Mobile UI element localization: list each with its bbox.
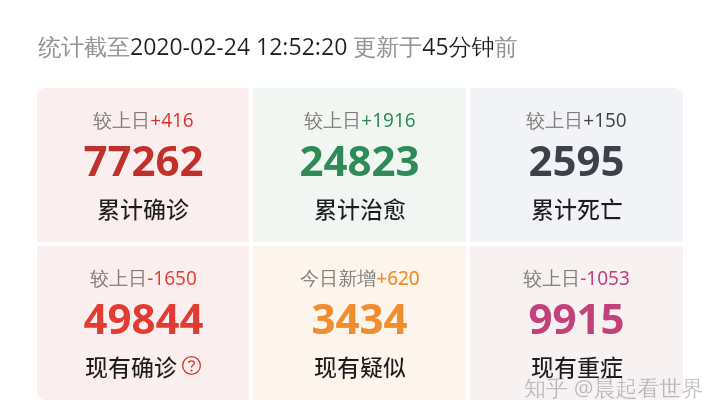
staticText: 2595 [528, 131, 625, 188]
staticText: 较上日+1916 [304, 107, 416, 133]
staticText: 现有确诊 [85, 349, 177, 382]
button[interactable]: 现有确诊说明 [182, 356, 201, 375]
staticText: 较上日+416 [93, 107, 194, 133]
staticText: 知乎 @晨起看世界 [524, 372, 704, 402]
staticText: 49844 [83, 289, 204, 346]
button[interactable]: 较上日+416 [37, 88, 249, 242]
staticText: 24823 [299, 131, 420, 188]
staticText: 累计治愈 [314, 191, 406, 224]
staticText: 3434 [311, 289, 408, 346]
button[interactable]: 较上日+150 [470, 88, 683, 242]
button[interactable]: 较上日-1053 [470, 246, 683, 400]
button[interactable]: 较上日+1916 [253, 88, 466, 242]
staticText: 较上日-1053 [523, 265, 630, 291]
staticText: 今日新增+620 [300, 265, 420, 291]
staticText: 现有重症 [531, 349, 623, 382]
staticText: 9915 [528, 289, 625, 346]
button[interactable]: 今日新增+620 [253, 246, 466, 400]
staticText: 较上日-1650 [90, 265, 197, 291]
button[interactable]: 较上日-1650 [37, 246, 249, 400]
staticText: 77262 [83, 131, 204, 188]
staticText: 较上日+150 [526, 107, 627, 133]
staticText: 累计死亡 [531, 191, 623, 224]
staticText: 现有疑似 [314, 349, 406, 382]
staticText: 累计确诊 [97, 191, 189, 224]
staticText: 统计截至2020-02-24 12:52:20 更新于45分钟前 [38, 30, 518, 61]
